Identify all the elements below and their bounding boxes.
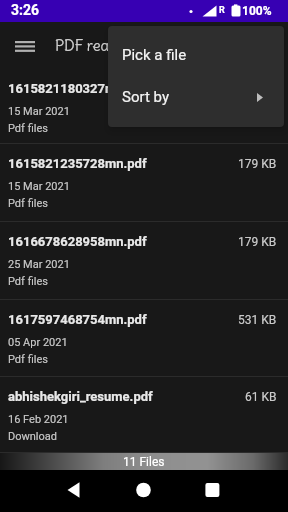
- staticText: PDF reader: [55, 36, 132, 55]
- button[interactable]: [192, 470, 288, 512]
- button[interactable]: 1615821180327mn.pdf: [0, 69, 288, 144]
- staticText: Pdf files: [8, 275, 48, 288]
- staticText: Pdf files: [8, 122, 48, 135]
- staticText: abhishekgiri_resume.pdf: [8, 389, 153, 404]
- staticText: 1615821235728mn.pdf: [8, 156, 147, 171]
- staticText: Sort by: [122, 88, 169, 106]
- staticText: 179 KB: [238, 157, 277, 171]
- button[interactable]: 1617597468754mn.pdf: [0, 300, 288, 377]
- staticText: 25 Mar 2021: [8, 258, 70, 271]
- staticText: 61 KB: [245, 390, 277, 404]
- staticText: Pick a file: [122, 46, 187, 64]
- staticText: 3:26: [11, 2, 40, 18]
- staticText: R: [219, 5, 225, 16]
- staticText: 531 KB: [238, 313, 277, 327]
- staticText: 16 Feb 2021: [8, 413, 69, 426]
- staticText: 15 Mar 2021: [8, 105, 70, 118]
- staticText: 15 Mar 2021: [8, 180, 70, 193]
- staticText: 1616678628958mn.pdf: [8, 234, 147, 249]
- staticText: Pdf files: [8, 197, 48, 210]
- button[interactable]: 1616678628958mn.pdf: [0, 222, 288, 300]
- staticText: 05 Apr 2021: [8, 336, 68, 349]
- staticText: 1617597468754mn.pdf: [8, 312, 147, 327]
- button[interactable]: 1615821235728mn.pdf: [0, 144, 288, 222]
- staticText: 1615821180327mn.pdf: [8, 81, 147, 96]
- staticText: Pdf files: [8, 353, 48, 366]
- button[interactable]: Pick a file: [108, 34, 284, 76]
- button[interactable]: [96, 470, 192, 512]
- staticText: 11 Files: [123, 455, 165, 469]
- staticText: 179 KB: [238, 82, 277, 96]
- staticText: 179 KB: [238, 235, 277, 249]
- button[interactable]: abhishekgiri_resume.pdf: [0, 377, 288, 453]
- staticText: Download: [8, 430, 57, 443]
- button[interactable]: [8, 35, 42, 57]
- button[interactable]: Sort by: [108, 76, 284, 118]
- staticText: 100%: [242, 4, 272, 18]
- button[interactable]: [0, 470, 96, 512]
